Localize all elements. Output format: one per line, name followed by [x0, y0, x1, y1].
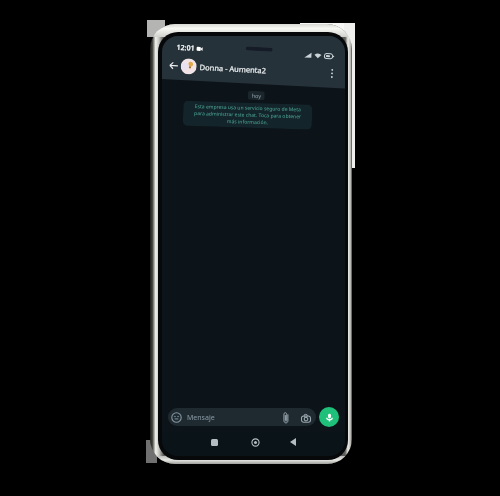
staticText: Mensaje — [187, 413, 215, 423]
button[interactable]: Voice message — [319, 407, 339, 427]
button[interactable]: Back — [286, 435, 299, 448]
staticText: 12:01 — [176, 43, 195, 54]
staticText: Donna - Aumenta2 — [199, 62, 267, 75]
staticText: Esta empresa usa un servicio seguro de M… — [190, 103, 305, 127]
button[interactable]: Esta empresa usa un servicio seguro de M… — [183, 101, 312, 130]
button[interactable]: More options — [325, 67, 339, 80]
button[interactable]: Recent apps — [208, 436, 221, 449]
staticText: hoy — [252, 92, 262, 99]
button[interactable]: Camera — [300, 413, 312, 423]
button[interactable]: Home — [249, 436, 262, 449]
button[interactable]: Mensaje — [168, 408, 316, 426]
button[interactable]: Back — [166, 58, 180, 72]
button[interactable]: Attach — [282, 411, 290, 424]
